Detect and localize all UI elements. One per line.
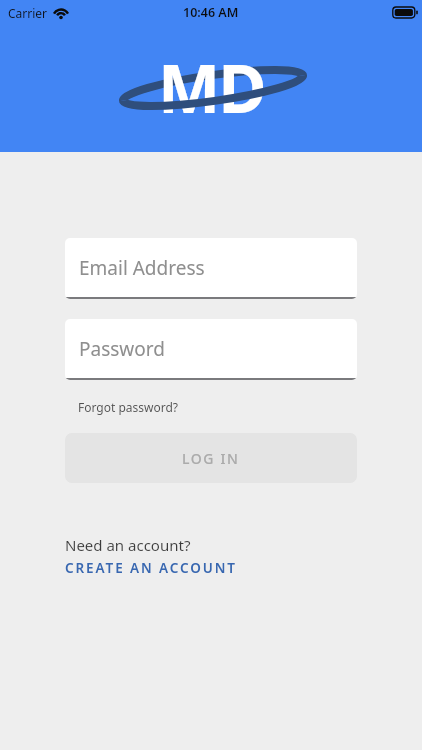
staticText: Need an account?: [65, 535, 191, 555]
button[interactable]: Email Address: [65, 238, 357, 299]
button[interactable]: CREATE AN ACCOUNT: [65, 559, 237, 577]
button[interactable]: Password: [65, 319, 357, 380]
staticText: 10:46 AM: [183, 4, 239, 21]
staticText: Password: [79, 336, 165, 362]
staticText: Carrier: [8, 5, 48, 21]
button[interactable]: Forgot password?: [78, 399, 179, 415]
staticText: LOG IN: [182, 449, 240, 468]
staticText: MD: [158, 42, 265, 132]
button[interactable]: LOG IN: [65, 433, 357, 483]
staticText: Email Address: [79, 255, 205, 281]
